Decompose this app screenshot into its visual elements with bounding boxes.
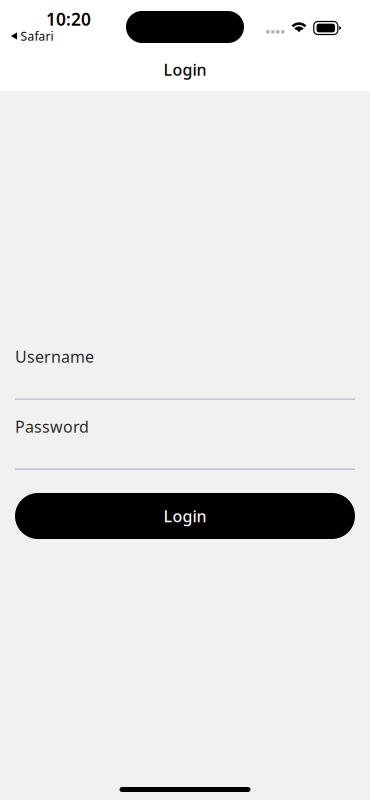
button[interactable]: Login xyxy=(15,493,355,539)
button[interactable]: Username xyxy=(0,346,370,400)
staticText: Login xyxy=(163,505,206,527)
staticText: 10:20 xyxy=(46,7,91,30)
staticText: Safari xyxy=(20,28,53,44)
button[interactable]: Password xyxy=(0,416,370,470)
staticText: Username xyxy=(15,346,94,367)
button[interactable]: Back to Safari xyxy=(0,30,59,42)
staticText: Login xyxy=(163,59,206,80)
staticText: Password xyxy=(15,416,89,437)
